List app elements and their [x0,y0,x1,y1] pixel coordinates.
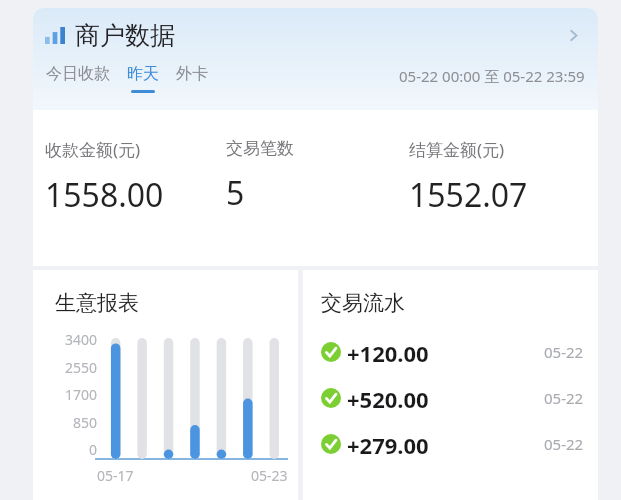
staticText: 05-23 [251,466,288,485]
button[interactable]: +279.00 [321,430,584,457]
staticText: 交易笔数 [226,138,294,159]
button[interactable]: 交易笔数 [226,138,409,215]
staticText: 昨天 [127,64,159,84]
staticText: 生意报表 [55,290,139,316]
button[interactable]: 今日收款 [45,64,111,93]
staticText: 1700 [64,385,97,404]
button[interactable]: 商户数据 [33,8,598,62]
button[interactable]: +120.00 [321,338,584,365]
staticText: 今日收款 [46,64,110,84]
button[interactable]: 收款金额(元) [45,138,226,217]
button[interactable]: 结算金额(元) [409,138,586,217]
staticText: 3400 [64,330,97,349]
staticText: +279.00 [347,430,429,457]
button[interactable]: 昨天 [126,64,160,93]
button[interactable]: 生意报表 [33,270,298,500]
button[interactable]: +520.00 [321,384,584,411]
button[interactable]: 交易流水 [303,270,598,500]
staticText: 收款金额(元) [45,138,141,161]
staticText: 5 [226,171,245,215]
staticText: 交易流水 [321,290,405,316]
staticText: 1552.07 [409,173,528,217]
staticText: +120.00 [347,338,429,365]
button[interactable]: 外卡 [175,64,209,93]
staticText: 外卡 [176,64,208,84]
staticText: 05-22 [544,388,584,408]
staticText: 05-22 [544,342,584,362]
staticText: 05-22 [544,434,584,454]
staticText: 850 [72,413,97,432]
other: 查看更多 [560,22,586,48]
staticText: 商户数据 [75,20,175,51]
staticText: 05-22 00:00 至 05-22 23:59 [399,66,585,86]
staticText: 结算金额(元) [409,138,505,161]
staticText: 2550 [64,358,97,377]
staticText: +520.00 [347,384,429,411]
staticText: 05-17 [97,466,134,485]
staticText: 0 [88,440,97,459]
staticText: 1558.00 [45,173,164,217]
